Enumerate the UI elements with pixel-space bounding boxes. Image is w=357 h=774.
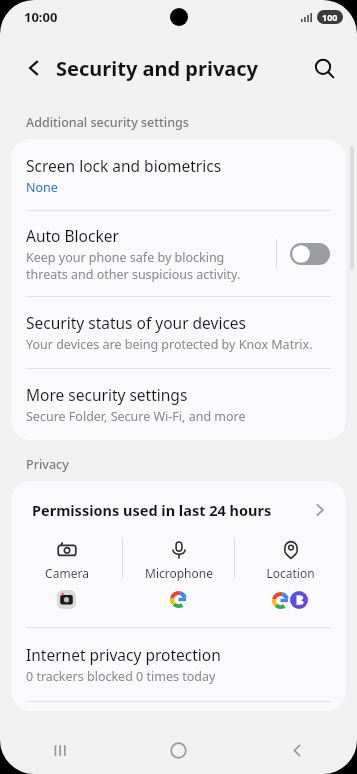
staticText: Microphone bbox=[145, 565, 213, 581]
staticText: Screen lock and biometrics bbox=[26, 155, 222, 176]
button[interactable]: Security status of your devices bbox=[11, 297, 346, 368]
button[interactable]: Back bbox=[14, 48, 54, 88]
button[interactable]: Microphone bbox=[123, 538, 234, 583]
button[interactable]: Location bbox=[235, 538, 346, 583]
button[interactable]: More security settings bbox=[11, 369, 346, 440]
staticText: None bbox=[26, 179, 58, 196]
staticText: Privacy bbox=[26, 456, 69, 473]
button[interactable]: Back bbox=[238, 726, 357, 774]
button[interactable]: Camera bbox=[11, 538, 122, 583]
staticText: Location bbox=[266, 565, 315, 581]
button[interactable]: Search bbox=[303, 47, 345, 89]
staticText: 10:00 bbox=[24, 8, 58, 26]
staticText: Secure Folder, Secure Wi-Fi, and more bbox=[26, 408, 246, 425]
button[interactable]: Screen lock and biometrics bbox=[11, 139, 346, 210]
staticText: Keep your phone safe by blocking threats… bbox=[26, 249, 268, 282]
staticText: 100 bbox=[322, 11, 338, 23]
staticText: 0 trackers blocked 0 times today bbox=[26, 668, 216, 685]
button[interactable]: Permissions used in last 24 hours bbox=[11, 481, 346, 528]
button[interactable]: Recents bbox=[0, 726, 119, 774]
button[interactable]: Auto Blocker bbox=[11, 211, 346, 296]
staticText: Camera bbox=[45, 565, 89, 581]
button[interactable]: Auto Blocker toggle bbox=[290, 243, 330, 265]
staticText: Auto Blocker bbox=[26, 225, 119, 246]
staticText: Permissions used in last 24 hours bbox=[32, 500, 312, 520]
staticText: Your devices are being protected by Knox… bbox=[26, 336, 313, 353]
button[interactable]: Internet privacy protection bbox=[11, 628, 346, 701]
staticText: Additional security settings bbox=[26, 114, 189, 131]
staticText: Security status of your devices bbox=[26, 312, 247, 333]
staticText: More security settings bbox=[26, 384, 188, 405]
button[interactable]: Home bbox=[119, 726, 238, 774]
staticText: Security and privacy bbox=[56, 55, 259, 82]
staticText: Internet privacy protection bbox=[26, 644, 221, 665]
